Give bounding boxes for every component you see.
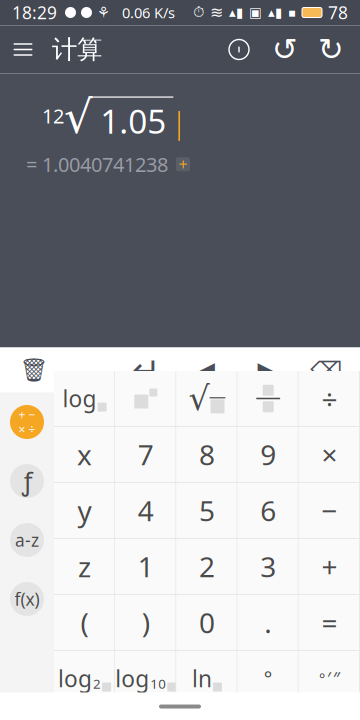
staticText: √	[188, 380, 209, 417]
staticText: y	[78, 492, 92, 529]
staticText: 计算	[52, 34, 102, 65]
staticText: ″	[333, 667, 340, 690]
button[interactable]: Delete	[296, 347, 356, 392]
button[interactable]: + −	[0, 392, 54, 451]
staticText: 1	[138, 548, 154, 585]
staticText: ▴▮	[229, 5, 243, 20]
button[interactable]: log	[54, 651, 115, 706]
staticText: °	[319, 669, 325, 688]
button[interactable]: ln	[176, 651, 238, 706]
staticText: ▪	[288, 6, 296, 19]
staticText: + −	[18, 407, 35, 422]
button[interactable]: Clear	[4, 347, 64, 392]
staticText: a-z	[15, 528, 39, 551]
button[interactable]: History	[216, 25, 262, 73]
staticText: ⚘	[97, 4, 110, 21]
button[interactable]: .	[238, 595, 299, 650]
staticText: ln	[192, 663, 212, 693]
staticText: °	[264, 665, 273, 692]
button[interactable]: 3	[238, 539, 299, 594]
button[interactable]: Undo	[262, 25, 308, 73]
staticText: ↵	[131, 350, 160, 390]
button[interactable]: Add to memory	[176, 157, 190, 171]
staticText: ′	[327, 667, 331, 690]
staticText: 10	[150, 675, 166, 692]
staticText: ƒ	[22, 464, 32, 498]
staticText: ×	[321, 436, 337, 473]
staticText: 🗑	[19, 357, 48, 383]
staticText: ⏱	[193, 5, 204, 20]
staticText: +	[178, 154, 187, 175]
button[interactable]: 8	[176, 427, 238, 482]
staticText: 0	[199, 604, 215, 641]
staticText: log	[115, 663, 149, 693]
button[interactable]: Move right	[236, 347, 296, 392]
button[interactable]: x	[54, 427, 115, 482]
staticText: −	[321, 492, 337, 529]
button[interactable]: √	[176, 371, 238, 426]
button[interactable]: 6	[238, 483, 299, 538]
button[interactable]: Menu	[0, 25, 46, 73]
button[interactable]: )	[115, 595, 176, 650]
button[interactable]: 计算	[46, 25, 102, 73]
staticText: .	[264, 604, 272, 641]
staticText: = 1.0040741238	[26, 151, 168, 178]
button[interactable]: °	[238, 651, 299, 706]
staticText: 18:29	[12, 1, 57, 24]
staticText: ÷	[321, 380, 337, 417]
button[interactable]	[115, 371, 176, 426]
button[interactable]: −	[299, 483, 360, 538]
staticText: )	[142, 604, 150, 641]
button[interactable]: +	[299, 539, 360, 594]
button[interactable]: ÷	[299, 371, 360, 426]
staticText: ▣	[249, 5, 262, 20]
staticText: 5	[199, 492, 215, 529]
button[interactable]: (	[54, 595, 115, 650]
staticText: ◀	[197, 357, 214, 383]
staticText: 6	[260, 492, 276, 529]
staticText: ⌫	[310, 357, 342, 383]
staticText: =	[321, 604, 337, 641]
button[interactable]: ƒ	[0, 451, 54, 510]
button[interactable]: 1	[115, 539, 176, 594]
button[interactable]	[238, 371, 299, 426]
button[interactable]: Move left	[176, 347, 236, 392]
staticText: ≋	[210, 3, 223, 22]
staticText: ▴▮	[268, 5, 282, 20]
button[interactable]: f(x)	[0, 569, 54, 628]
staticText: 9	[260, 436, 276, 473]
button[interactable]: 4	[115, 483, 176, 538]
staticText: 8	[199, 436, 215, 473]
button[interactable]: log	[54, 371, 115, 426]
staticText: (	[81, 604, 89, 641]
staticText: +	[321, 548, 337, 585]
staticText: √	[64, 91, 93, 143]
button[interactable]: =	[299, 595, 360, 650]
button[interactable]: y	[54, 483, 115, 538]
button[interactable]: °	[299, 651, 360, 706]
button[interactable]: z	[54, 539, 115, 594]
staticText: 78	[328, 1, 348, 24]
button[interactable]: Enter	[116, 347, 176, 392]
staticText: 2	[199, 548, 215, 585]
button[interactable]: 7	[115, 427, 176, 482]
staticText: f(x)	[14, 587, 39, 610]
staticText: log	[63, 383, 97, 413]
staticText: 0.06 K/s	[122, 3, 175, 22]
staticText: log	[58, 663, 92, 693]
button[interactable]: 5	[176, 483, 238, 538]
staticText: ▶	[257, 357, 274, 383]
staticText: × ÷	[18, 421, 35, 437]
staticText: 4	[138, 492, 154, 529]
button[interactable]: 2	[176, 539, 238, 594]
button[interactable]: a-z	[0, 510, 54, 569]
staticText: z	[78, 548, 91, 585]
staticText: x	[77, 436, 92, 473]
button[interactable]: 9	[238, 427, 299, 482]
button[interactable]: ×	[299, 427, 360, 482]
button[interactable]: 0	[176, 595, 238, 650]
staticText: 3	[260, 548, 276, 585]
button[interactable]: log	[115, 651, 176, 706]
button[interactable]: Redo	[308, 25, 354, 73]
staticText: 12	[42, 102, 64, 129]
